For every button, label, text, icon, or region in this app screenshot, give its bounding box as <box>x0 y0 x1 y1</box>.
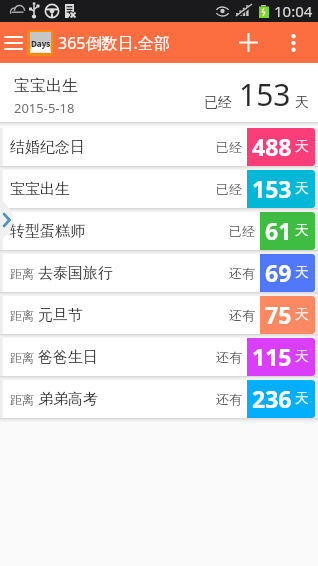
staticText: 还有 <box>216 391 242 407</box>
staticText: 2015-5-18 <box>14 99 75 117</box>
staticText: 还有 <box>229 307 255 323</box>
staticText: 宝宝出生 <box>10 180 70 199</box>
staticText: 距离 <box>10 392 34 407</box>
staticText: 距离 <box>10 350 34 365</box>
staticText: 距离 <box>10 266 34 281</box>
staticText: 结婚纪念日 <box>10 138 85 157</box>
staticText: 天 <box>295 138 309 156</box>
staticText: 69 <box>265 257 292 288</box>
staticText: 天 <box>295 264 309 282</box>
button[interactable]: 宝宝出生 <box>0 63 318 122</box>
staticText: 去泰国旅行 <box>38 264 113 283</box>
staticText: 236 <box>252 383 292 414</box>
staticText: 已经 <box>204 94 232 112</box>
staticText: 已经 <box>216 181 242 197</box>
staticText: 153 <box>239 74 291 115</box>
staticText: Days <box>31 38 51 49</box>
staticText: 61 <box>265 215 292 246</box>
staticText: 宝宝出生 <box>14 76 78 96</box>
staticText: 弟弟高考 <box>38 390 98 409</box>
button[interactable]: Menu <box>0 22 27 63</box>
staticText: 488 <box>252 131 292 162</box>
staticText: 天 <box>295 348 309 366</box>
button[interactable]: Open drawer <box>0 199 13 241</box>
staticText: 转型蛋糕师 <box>10 222 85 241</box>
button[interactable]: 距离 <box>3 380 315 418</box>
staticText: 365倒数日.全部 <box>58 32 170 54</box>
staticText: 天 <box>295 222 309 240</box>
button[interactable]: 宝宝出生 <box>3 170 315 208</box>
button[interactable]: 结婚纪念日 <box>3 128 315 166</box>
staticText: 天 <box>295 390 309 408</box>
staticText: 天 <box>295 306 309 324</box>
staticText: 爸爸生日 <box>38 348 98 367</box>
staticText: 153 <box>252 173 292 204</box>
button[interactable]: 距离 <box>3 338 315 376</box>
button[interactable]: More options <box>269 22 318 63</box>
staticText: 天 <box>295 180 309 198</box>
staticText: 75 <box>265 299 292 330</box>
staticText: 还有 <box>229 265 255 281</box>
staticText: 天 <box>295 94 309 112</box>
staticText: 10:04 <box>274 1 313 21</box>
staticText: 还有 <box>216 349 242 365</box>
staticText: 已经 <box>216 139 242 155</box>
button[interactable]: 距离 <box>3 254 315 292</box>
staticText: 元旦节 <box>38 306 83 325</box>
button[interactable]: 转型蛋糕师 <box>3 212 315 250</box>
staticText: 115 <box>252 341 292 372</box>
button[interactable]: App icon <box>27 30 53 56</box>
button[interactable]: Add <box>228 22 269 63</box>
staticText: 已经 <box>229 223 255 239</box>
staticText: 距离 <box>10 308 34 323</box>
button[interactable]: 距离 <box>3 296 315 334</box>
